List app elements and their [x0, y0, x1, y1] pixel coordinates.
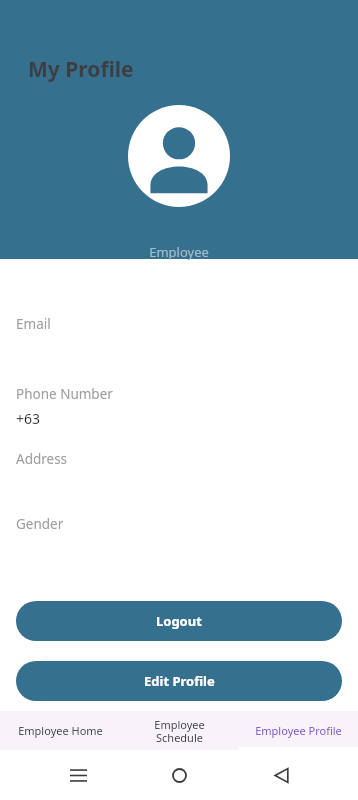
staticText: Phone Number — [16, 385, 113, 403]
staticText: Gender — [16, 515, 64, 533]
button[interactable]: Edit Profile — [16, 661, 342, 701]
staticText: Employee Schedule — [154, 717, 205, 745]
staticText: Employee Home — [18, 723, 103, 738]
staticText: +63 — [16, 409, 41, 428]
button[interactable]: Employee Profile — [239, 711, 358, 750]
staticText: Edit Profile — [144, 672, 215, 690]
staticText: My Profile — [28, 55, 134, 84]
staticText: Logout — [156, 612, 202, 630]
staticText: Employee Profile — [255, 723, 342, 738]
staticText: Address — [16, 450, 68, 468]
button[interactable]: Back — [257, 751, 305, 799]
button[interactable]: Logout — [16, 601, 342, 641]
button[interactable]: Employee Schedule — [120, 711, 239, 750]
staticText: Employee — [0, 243, 358, 261]
button[interactable]: Employee Home — [0, 711, 120, 750]
button[interactable]: Home — [155, 751, 203, 799]
staticText: Email — [16, 315, 51, 333]
button[interactable]: Recent apps — [54, 751, 102, 799]
